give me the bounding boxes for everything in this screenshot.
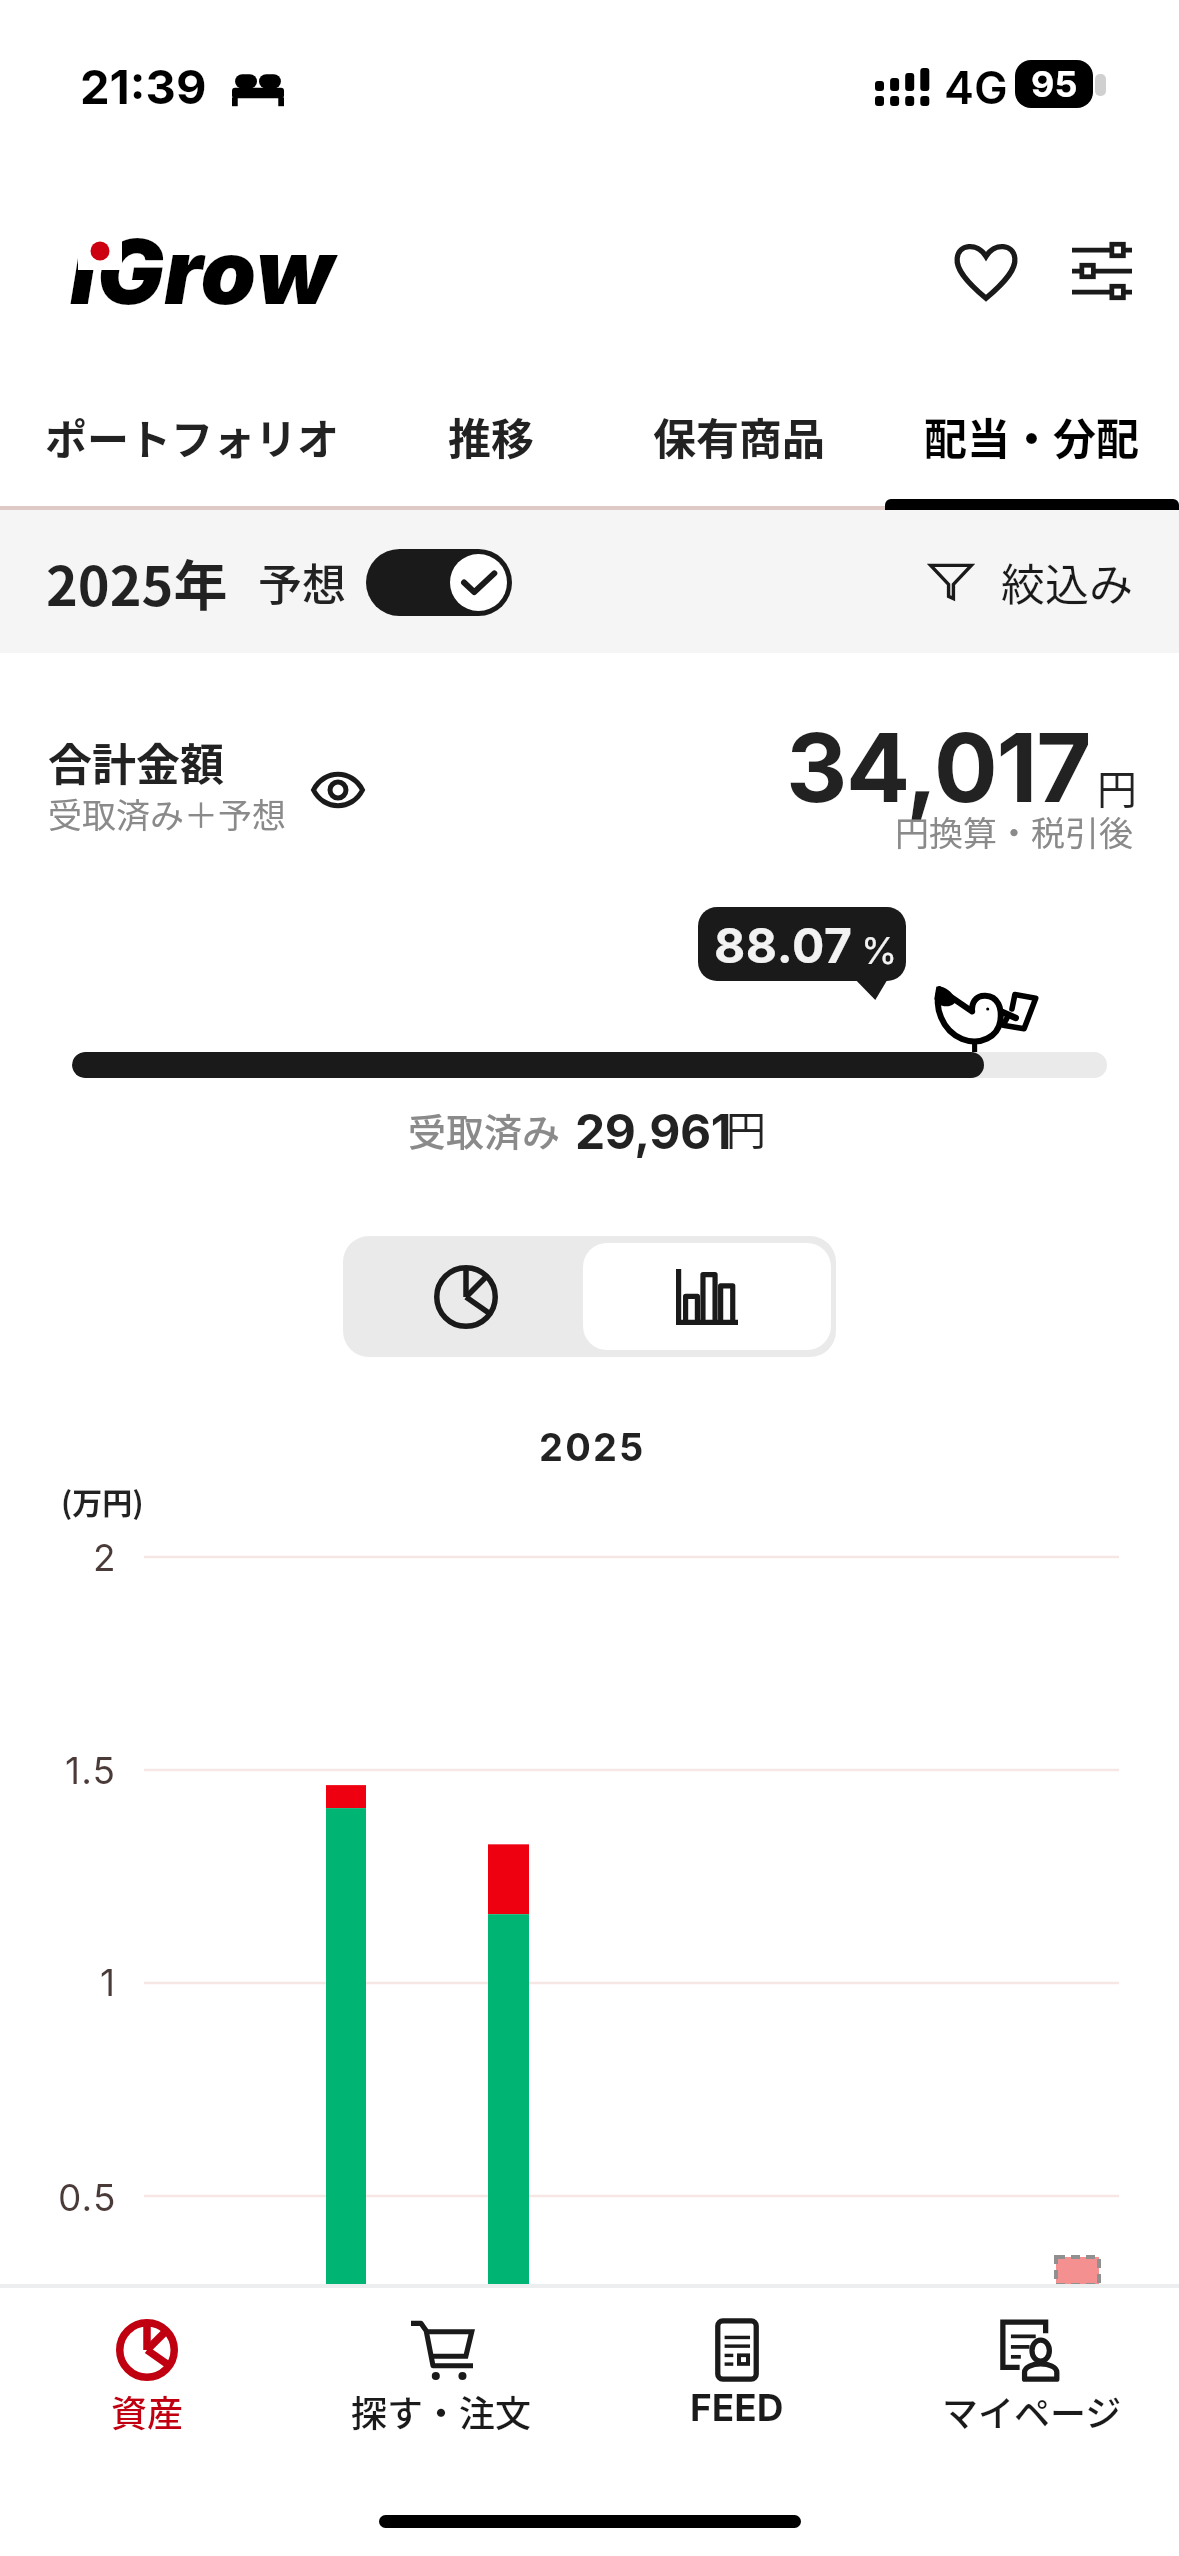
staticText: % xyxy=(861,928,898,973)
button[interactable]: Settings xyxy=(1052,221,1152,321)
staticText: 88.07 xyxy=(714,916,853,974)
staticText: 21:39 xyxy=(80,58,207,115)
staticText: FEED xyxy=(690,2385,784,2430)
staticText: 0.5 xyxy=(58,2175,117,2220)
button[interactable]: Toggle forecast xyxy=(366,549,512,616)
staticText: iGrow xyxy=(70,218,335,326)
staticText: 1 xyxy=(100,1960,117,2005)
staticText: マイページ xyxy=(942,2385,1122,2437)
button[interactable]: ポートフォリオ xyxy=(23,372,361,500)
staticText: 2025年 xyxy=(46,543,228,621)
staticText: 円換算・税引後 xyxy=(895,807,1133,856)
button[interactable]: 絞込み xyxy=(929,550,1133,614)
button[interactable]: Favorites xyxy=(936,221,1036,321)
button[interactable]: 保有商品 xyxy=(627,372,850,500)
staticText: 受取済み xyxy=(408,1102,561,1157)
staticText: 保有商品 xyxy=(653,405,825,467)
button[interactable]: Toggle visibility xyxy=(296,748,380,832)
staticText: 絞込み xyxy=(1001,550,1133,614)
staticText: 受取済み＋予想 xyxy=(48,789,286,838)
staticText: 配当・分配 xyxy=(924,405,1139,467)
staticText: 4G xyxy=(944,60,1008,114)
staticText: 95 xyxy=(1031,62,1078,106)
button[interactable]: マイページ xyxy=(884,2290,1179,2490)
staticText: 予想 xyxy=(258,550,346,614)
staticText: 34,017 xyxy=(786,710,1091,825)
staticText: 探す・注文 xyxy=(351,2385,532,2437)
staticText: 29,961 xyxy=(575,1102,732,1160)
button[interactable]: 探す・注文 xyxy=(294,2290,589,2490)
staticText: (万円) xyxy=(61,1479,144,1522)
button[interactable]: 推移 xyxy=(421,372,561,500)
staticText: 推移 xyxy=(448,405,534,467)
button[interactable]: 配当・分配 xyxy=(901,372,1162,500)
staticText: 円 xyxy=(1097,758,1137,816)
staticText: ポートフォリオ xyxy=(45,406,340,467)
staticText: 2 xyxy=(93,1535,117,1580)
staticText: 2025 xyxy=(539,1424,646,1470)
staticText: 資産 xyxy=(111,2385,184,2437)
button[interactable]: 資産 xyxy=(0,2290,294,2490)
staticText: 合計金額 xyxy=(48,730,224,794)
button[interactable]: FEED xyxy=(589,2290,884,2490)
button[interactable]: Pie chart view xyxy=(343,1236,589,1357)
staticText: 1.5 xyxy=(65,1748,117,1793)
staticText: 円 xyxy=(726,1099,766,1157)
button[interactable]: Bar chart view xyxy=(589,1236,836,1357)
